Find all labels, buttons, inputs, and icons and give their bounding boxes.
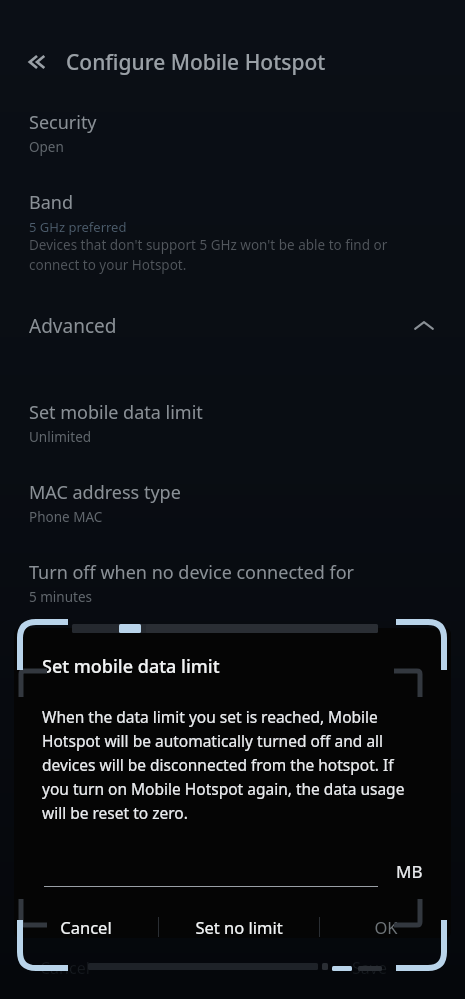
staticText: OK (374, 916, 398, 938)
staticText: 5 minutes (29, 588, 92, 606)
button[interactable]: Set no limit (159, 915, 319, 938)
staticText: Unlimited (29, 428, 92, 446)
staticText: MAC address type (29, 480, 181, 505)
staticText: Security (29, 110, 97, 135)
staticText: Turn off when no device connected for (29, 560, 354, 585)
staticText: Advanced (29, 313, 117, 339)
staticText: Set no limit (195, 916, 283, 938)
button[interactable]: Band (0, 190, 465, 274)
staticText: MB (396, 860, 423, 883)
button[interactable]: Set mobile data limit (0, 400, 465, 446)
staticText: 5 GHz preferred (29, 218, 127, 236)
button[interactable]: Security (0, 110, 465, 156)
staticText: Configure Mobile Hotspot (66, 48, 326, 77)
staticText: Devices that don't support 5 GHz won't b… (29, 236, 436, 274)
staticText: When the data limit you set is reached, … (42, 706, 423, 823)
staticText: Set mobile data limit (42, 654, 220, 679)
staticText: Set mobile data limit (29, 400, 203, 425)
staticText: Open (29, 138, 64, 156)
button[interactable]: Turn off when no device connected for (0, 560, 465, 606)
button[interactable]: MAC address type (0, 480, 465, 526)
staticText: Save (352, 957, 387, 979)
button[interactable]: Advanced (0, 304, 465, 348)
staticText: Band (29, 190, 73, 215)
button[interactable]: Cancel (14, 915, 158, 938)
button[interactable]: OK (320, 915, 451, 938)
button[interactable]: Back (16, 42, 56, 82)
staticText: Cancel (60, 916, 112, 938)
staticText: Cancel (40, 957, 90, 979)
staticText: Phone MAC (29, 508, 103, 526)
